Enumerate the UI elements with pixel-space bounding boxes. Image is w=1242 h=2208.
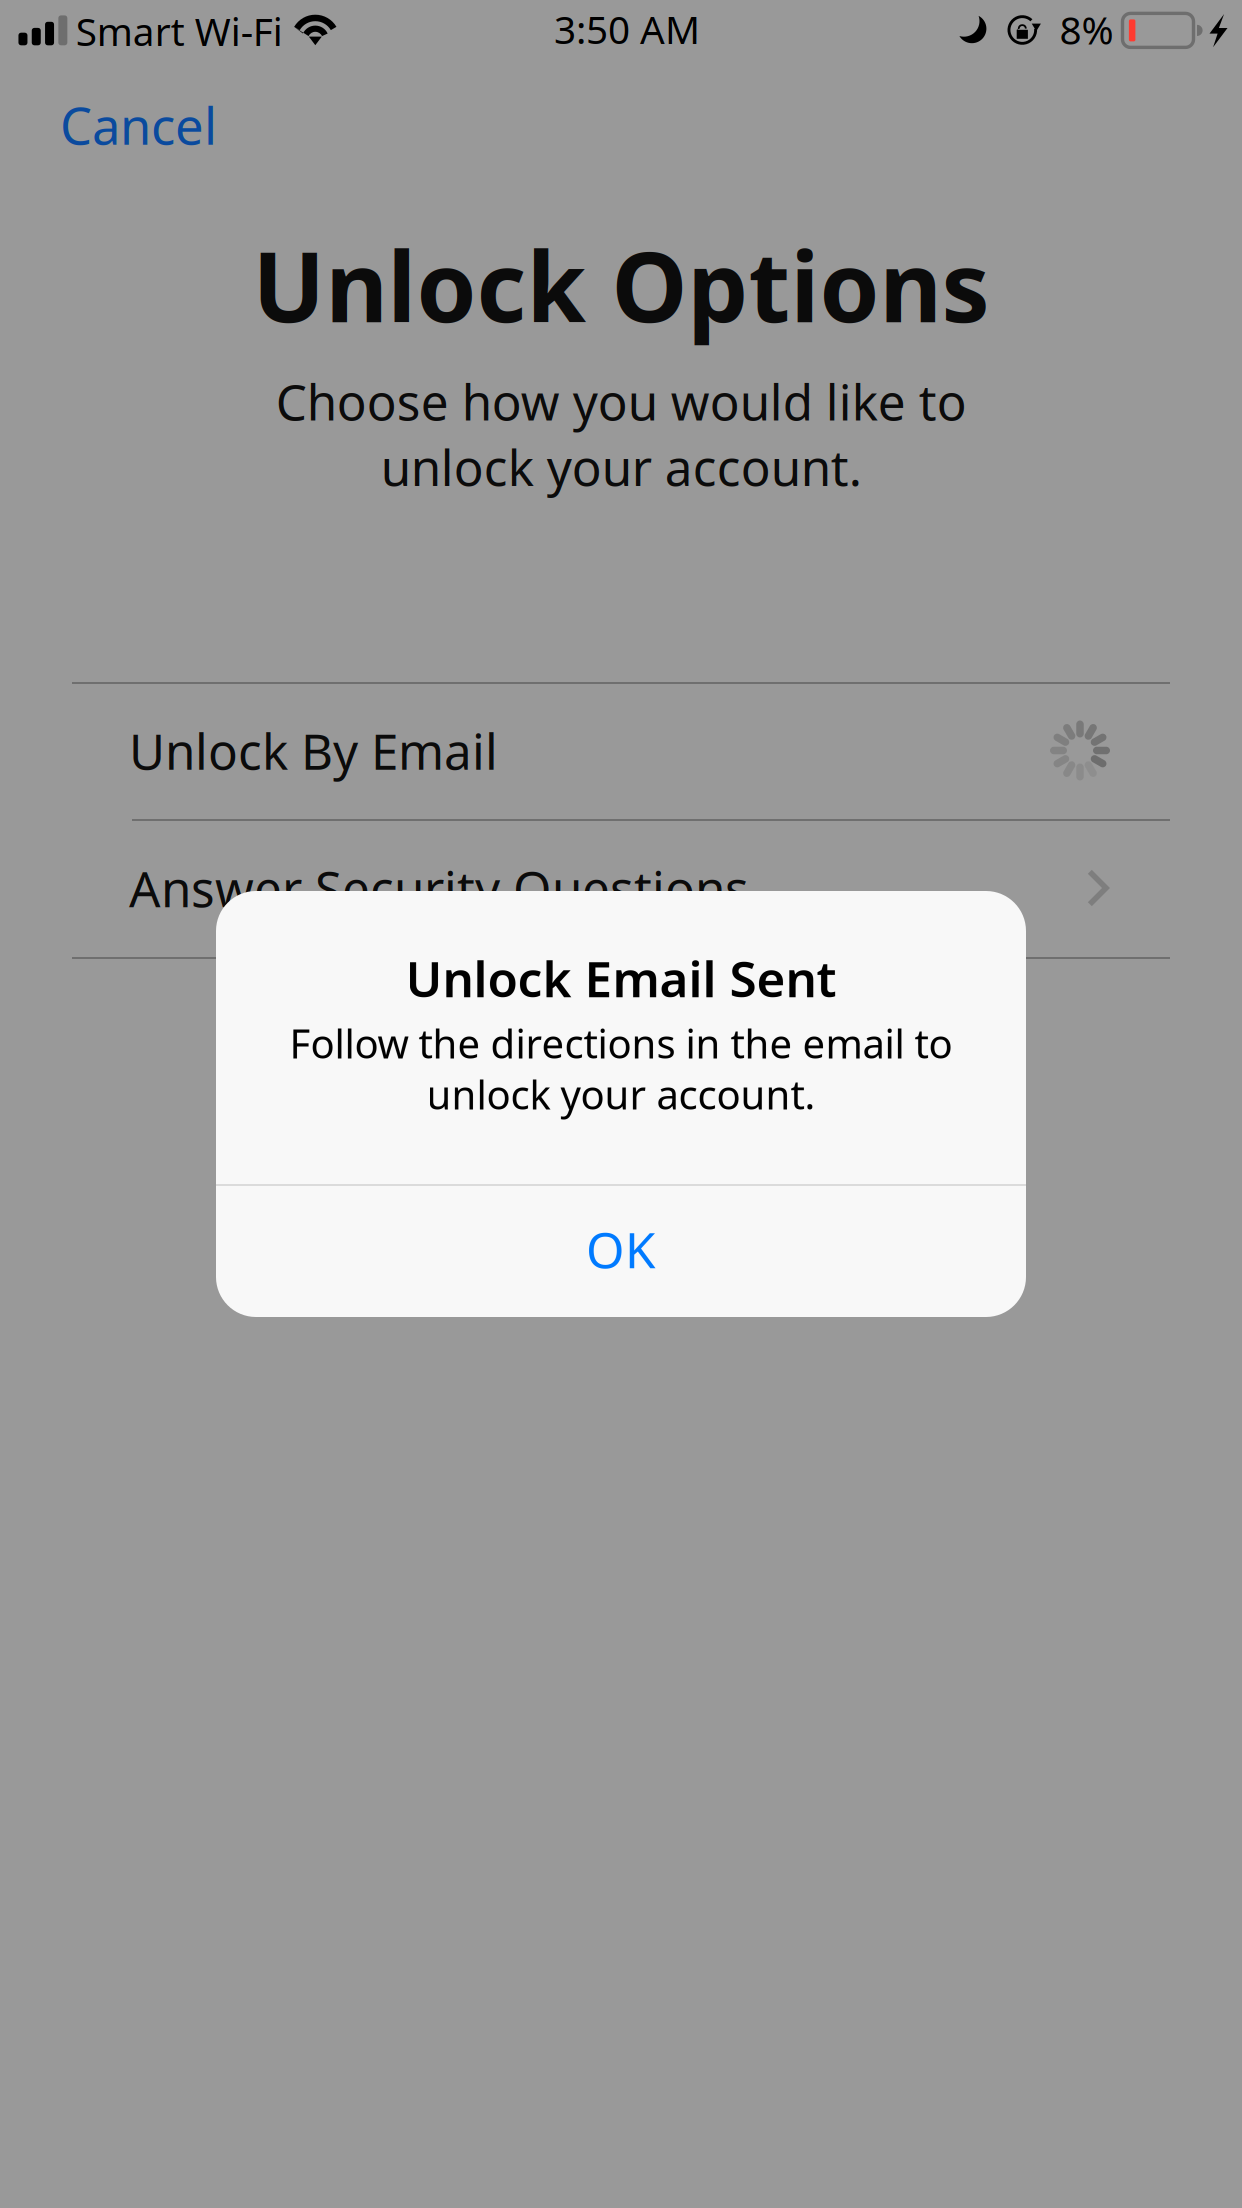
staticText: unlock your account. [426,1067,815,1120]
staticText: Answer Security Questions [129,855,749,921]
button[interactable]: OK [216,1183,1026,1314]
staticText: 8% [1059,4,1113,55]
staticText: Smart Wi-Fi [76,5,283,57]
staticText: 3:50 AM [554,3,700,55]
button[interactable]: Answer Security Questions [0,819,1242,957]
staticText: Follow the directions in the email to [289,1016,952,1069]
button[interactable]: Cancel [0,81,246,169]
staticText: Choose how you would like to unlock your… [275,368,966,499]
button[interactable]: Unlock By Email [0,682,1242,819]
staticText: Unlock Email Sent [405,945,836,1011]
staticText: OK [586,1216,656,1282]
staticText: Unlock By Email [129,718,498,783]
staticText: Unlock Options [252,221,989,349]
staticText: Cancel [60,91,217,159]
